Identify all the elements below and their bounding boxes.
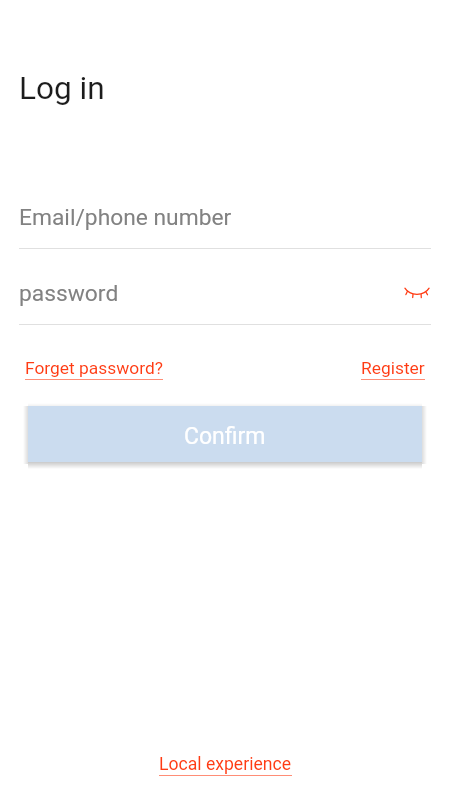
staticText: password	[19, 280, 401, 307]
button[interactable]: password	[0, 278, 450, 325]
button[interactable]: Local experience	[159, 754, 292, 775]
staticText: Forget password?	[25, 358, 163, 378]
button[interactable]: Register	[361, 358, 425, 378]
staticText: Log in	[19, 70, 105, 107]
staticText: Local experience	[159, 754, 292, 775]
button[interactable]: Show password	[402, 277, 432, 307]
button[interactable]: Email/phone number	[0, 204, 450, 249]
button[interactable]: Confirm	[28, 406, 422, 462]
button[interactable]: Forget password?	[25, 358, 163, 378]
staticText: Email/phone number	[19, 204, 232, 231]
staticText: Register	[361, 358, 425, 378]
staticText: Confirm	[184, 423, 266, 450]
